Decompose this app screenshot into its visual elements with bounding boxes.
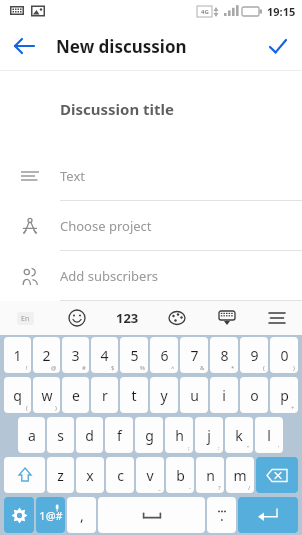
staticText: +: [291, 404, 295, 412]
button[interactable]: 0: [270, 337, 298, 373]
button[interactable]: 6: [150, 337, 178, 373]
staticText: Add subscribers: [60, 267, 159, 285]
staticText: $: [111, 364, 115, 372]
button[interactable]: Discussion title: [0, 89, 302, 129]
staticText: c: [117, 466, 124, 485]
button[interactable]: Text: [0, 151, 302, 201]
staticText: (: [263, 364, 265, 372]
button[interactable]: z: [47, 457, 74, 493]
button[interactable]: Save: [254, 22, 302, 70]
button[interactable]: Add subscribers: [0, 251, 302, 301]
button[interactable]: i: [210, 377, 238, 413]
button[interactable]: u: [180, 377, 208, 413]
button[interactable]: w: [33, 377, 60, 413]
button[interactable]: n: [196, 457, 224, 493]
button[interactable]: t: [120, 377, 148, 413]
staticText: w: [41, 386, 53, 405]
button[interactable]: Keyboard: [202, 301, 252, 335]
button[interactable]: 1@#: [36, 497, 65, 533]
staticText: Discussion title: [60, 99, 174, 119]
staticText: n: [206, 466, 215, 485]
button[interactable]: .: [207, 497, 236, 533]
staticText: e: [72, 386, 80, 405]
button[interactable]: x: [76, 457, 104, 493]
staticText: 6: [160, 346, 169, 365]
button[interactable]: k: [225, 417, 253, 453]
staticText: -: [189, 484, 191, 492]
button[interactable]: f: [105, 417, 133, 453]
staticText: En: [21, 314, 30, 324]
staticText: f: [117, 426, 122, 445]
button[interactable]: l: [255, 417, 283, 453]
staticText: k: [235, 426, 243, 445]
staticText: g: [145, 426, 154, 445]
staticText: d: [85, 426, 94, 445]
staticText: q: [13, 386, 22, 405]
button[interactable]: r: [91, 377, 118, 413]
button[interactable]: Settings: [4, 497, 34, 533]
button[interactable]: Emoji: [51, 301, 102, 335]
staticText: #: [82, 364, 86, 372]
staticText: s: [57, 426, 64, 445]
staticText: _: [158, 484, 161, 492]
button[interactable]: y: [150, 377, 178, 413]
button[interactable]: a: [18, 417, 45, 453]
button[interactable]: Menu: [252, 301, 302, 335]
staticText: ?: [218, 484, 221, 492]
button[interactable]: e: [62, 377, 89, 413]
button[interactable]: Choose project: [0, 201, 302, 251]
button[interactable]: v: [136, 457, 164, 493]
staticText: /: [248, 484, 251, 492]
staticText: o: [250, 386, 259, 405]
staticText: 2: [42, 346, 51, 365]
staticText: m: [233, 466, 247, 485]
staticText: ;: [188, 444, 190, 452]
button[interactable]: 8: [210, 337, 238, 373]
button[interactable]: h: [165, 417, 193, 453]
button[interactable]: Enter: [238, 497, 298, 533]
button[interactable]: ,: [67, 497, 96, 533]
button[interactable]: Language: [0, 301, 51, 335]
button[interactable]: p: [270, 377, 298, 413]
button[interactable]: Numbers: [102, 301, 152, 335]
staticText: i: [222, 386, 226, 405]
button[interactable]: m: [226, 457, 254, 493]
staticText: :: [218, 444, 220, 452]
button[interactable]: Shift: [4, 457, 45, 493]
button[interactable]: 3: [62, 337, 89, 373]
staticText: p: [280, 386, 289, 405]
button[interactable]: o: [240, 377, 268, 413]
button[interactable]: 7: [180, 337, 208, 373]
staticText: 0: [280, 346, 289, 365]
staticText: z: [57, 466, 64, 485]
staticText: x: [86, 466, 94, 485]
staticText: u: [190, 386, 199, 405]
button[interactable]: g: [135, 417, 163, 453]
staticText: l: [267, 426, 271, 445]
staticText: 7: [190, 346, 199, 365]
staticText: 8: [220, 346, 229, 365]
button[interactable]: Theme: [152, 301, 202, 335]
button[interactable]: 4: [91, 337, 118, 373]
button[interactable]: 2: [33, 337, 60, 373]
button[interactable]: q: [4, 377, 31, 413]
staticText: 1: [13, 346, 22, 365]
staticText: 5: [130, 346, 139, 365]
staticText: ": [247, 444, 250, 452]
button[interactable]: Space: [98, 497, 205, 533]
button[interactable]: j: [195, 417, 223, 453]
staticText: ,: [80, 506, 84, 525]
button[interactable]: 9: [240, 337, 268, 373]
button[interactable]: c: [106, 457, 134, 493]
staticText: New discussion: [56, 35, 187, 58]
button[interactable]: Backspace: [256, 457, 298, 493]
staticText: b: [176, 466, 185, 485]
button[interactable]: Back: [0, 22, 48, 70]
button[interactable]: 5: [120, 337, 148, 373]
button[interactable]: d: [76, 417, 103, 453]
button[interactable]: 1: [4, 337, 31, 373]
button[interactable]: s: [47, 417, 74, 453]
button[interactable]: b: [166, 457, 194, 493]
staticText: Choose project: [60, 217, 152, 235]
staticText: %: [140, 364, 145, 372]
